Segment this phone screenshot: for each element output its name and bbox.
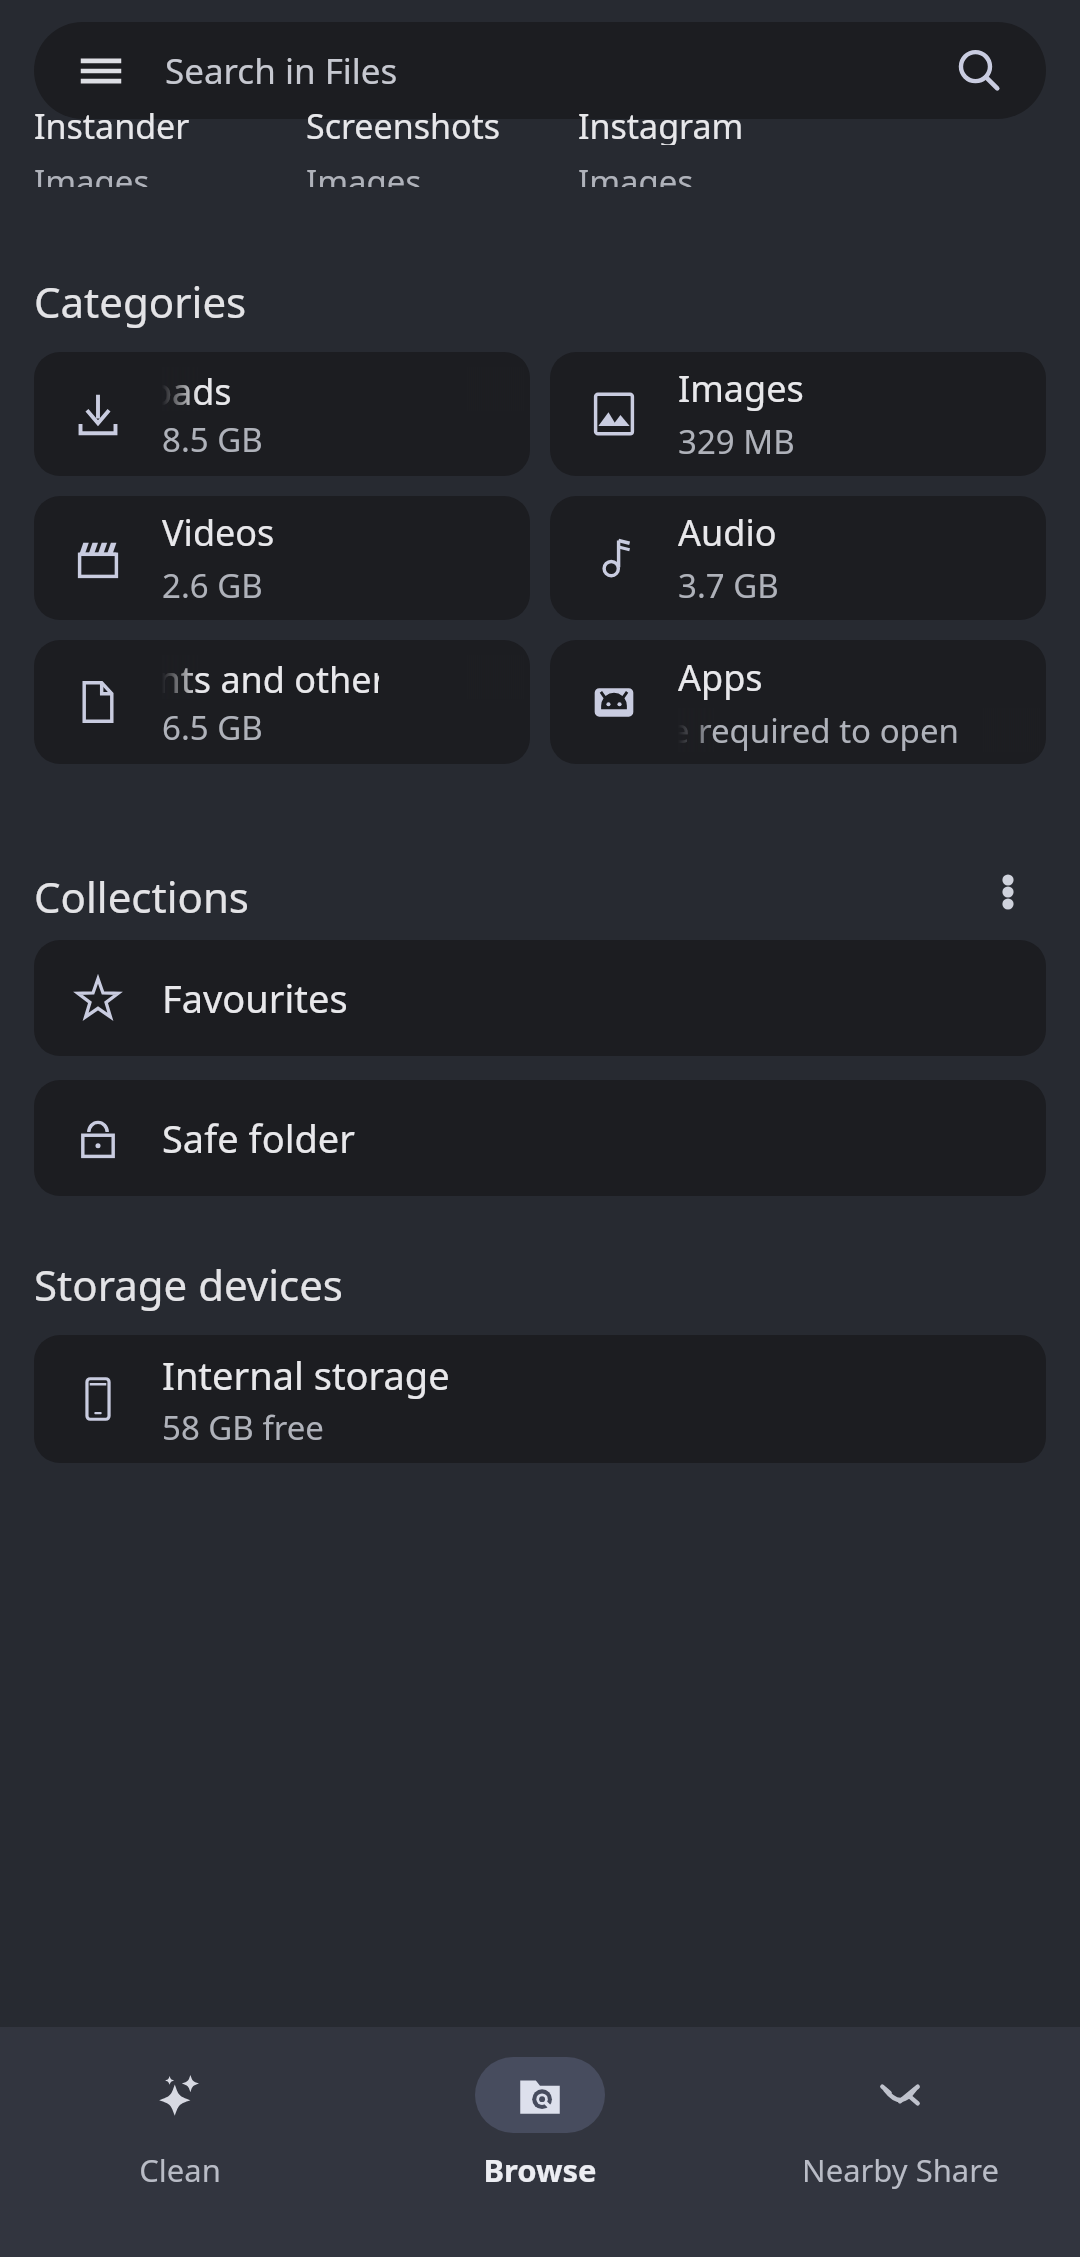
- button[interactable]: Nearby Share: [720, 2057, 1080, 2191]
- staticText: 3.7 GB: [678, 563, 779, 608]
- staticText: Audio: [678, 508, 777, 557]
- staticText: 8.5 GB: [162, 417, 263, 462]
- staticText: Downloads: [162, 367, 232, 411]
- staticText: 329 MB: [678, 419, 795, 464]
- staticText: Clean: [139, 2149, 221, 2191]
- staticText: Images: [34, 159, 150, 187]
- staticText: Browse: [483, 2149, 597, 2191]
- staticText: Images: [306, 159, 422, 187]
- button[interactable]: Search: [944, 36, 1014, 106]
- staticText: 6.5 GB: [162, 705, 263, 750]
- button[interactable]: More options: [976, 868, 1040, 916]
- staticText: Categories: [34, 273, 247, 330]
- button[interactable]: Open navigation menu: [72, 42, 130, 100]
- button[interactable]: Safe folder: [34, 1080, 1046, 1196]
- button[interactable]: Apps: [550, 640, 1046, 764]
- staticText: Storage devices: [34, 1256, 343, 1313]
- staticText: Favourites: [162, 972, 348, 1024]
- staticText: Screenshots: [306, 103, 501, 145]
- button[interactable]: Open navigation menu: [34, 22, 1046, 119]
- button[interactable]: Audio: [550, 496, 1046, 620]
- staticText: Images: [578, 159, 694, 187]
- staticText: 2.6 GB: [162, 563, 263, 608]
- staticText: Space required to open: [678, 708, 959, 752]
- staticText: Images: [678, 364, 804, 413]
- staticText: Collections: [34, 868, 249, 916]
- button[interactable]: Downloads: [34, 352, 530, 476]
- button[interactable]: Browse: [360, 2057, 720, 2191]
- staticText: Safe folder: [162, 1112, 355, 1164]
- staticText: Videos: [162, 508, 275, 557]
- button[interactable]: Favourites: [34, 940, 1046, 1056]
- staticText: Instander: [34, 103, 190, 145]
- button[interactable]: Images: [550, 352, 1046, 476]
- staticText: Nearby Share: [802, 2149, 999, 2191]
- staticText: Internal storage: [162, 1349, 450, 1401]
- staticText: Apps: [678, 653, 763, 702]
- button[interactable]: Documents and other: [34, 640, 530, 764]
- staticText: Search in Files: [165, 47, 398, 95]
- staticText: Instagram: [578, 103, 744, 145]
- staticText: Documents and other: [162, 655, 379, 699]
- button[interactable]: Videos: [34, 496, 530, 620]
- staticText: 58 GB free: [162, 1405, 324, 1450]
- button[interactable]: Internal storage: [34, 1335, 1046, 1463]
- button[interactable]: Clean: [0, 2057, 360, 2191]
